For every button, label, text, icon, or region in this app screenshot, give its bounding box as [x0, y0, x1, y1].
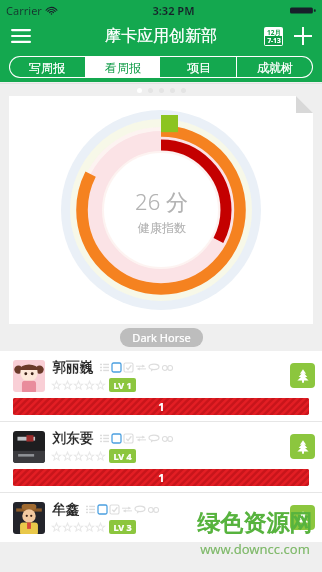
button[interactable]: Achievement tree — [290, 434, 315, 459]
button[interactable]: 牟鑫 — [0, 493, 322, 542]
staticText: www.downcc.com — [200, 540, 310, 558]
button[interactable]: 写周报 — [10, 57, 84, 77]
staticText: 看周报 — [105, 60, 141, 75]
staticText: 健康指数 — [138, 220, 186, 235]
staticText: Dark Horse — [132, 330, 191, 345]
staticText: 1 — [158, 470, 165, 485]
staticText: Carrier — [6, 3, 42, 18]
button[interactable]: Menu — [6, 21, 36, 51]
button[interactable]: Achievement tree — [290, 505, 315, 530]
staticText: 12月 — [267, 28, 281, 36]
button[interactable]: 项目 — [161, 57, 236, 77]
staticText: 刘东要 — [52, 430, 93, 447]
staticText: 摩卡应用创新部 — [105, 26, 217, 46]
staticText: 郭丽巍 — [52, 359, 93, 376]
staticText: 牟鑫 — [52, 501, 79, 518]
button[interactable]: 刘东要 — [0, 422, 322, 492]
button[interactable]: 看周报 — [85, 57, 160, 77]
staticText: 1 — [158, 399, 165, 414]
staticText: 26 分 — [135, 186, 188, 216]
staticText: LV 4 — [113, 450, 132, 462]
button[interactable]: Achievement tree — [290, 363, 315, 388]
button[interactable]: Dark Horse — [120, 328, 203, 347]
button[interactable]: 郭丽巍 — [0, 351, 322, 421]
staticText: 3:32 PM — [152, 3, 195, 18]
staticText: 写周报 — [29, 60, 65, 75]
staticText: 绿色资源网 — [197, 509, 312, 538]
button[interactable]: Calendar week — [259, 22, 287, 50]
staticText: 项目 — [187, 60, 211, 75]
staticText: 成就树 — [257, 60, 293, 75]
button[interactable]: Add — [289, 22, 317, 50]
button[interactable]: 成就树 — [237, 57, 312, 77]
staticText: LV 3 — [113, 521, 132, 533]
staticText: 7-13 — [267, 36, 281, 45]
staticText: LV 1 — [113, 379, 132, 391]
